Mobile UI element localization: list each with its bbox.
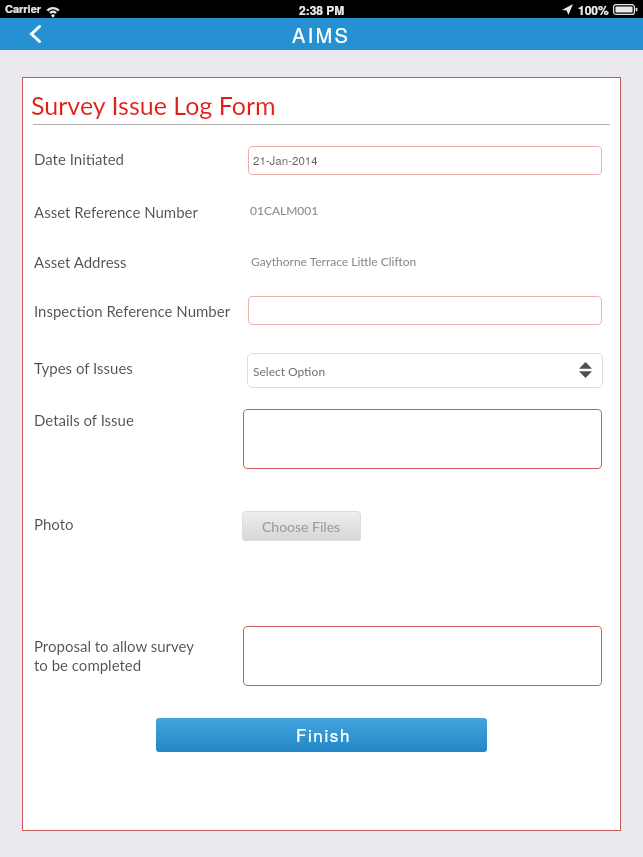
- staticText: 21-Jan-2014: [253, 152, 318, 168]
- staticText: 100%: [578, 1, 609, 18]
- button[interactable]: Details of Issue: [243, 409, 602, 469]
- staticText: 01CALM001: [250, 203, 319, 217]
- staticText: Carrier: [5, 1, 42, 17]
- staticText: 2:38 PM: [299, 1, 345, 18]
- button[interactable]: Inspection Reference Number: [248, 296, 602, 325]
- staticText: Gaythorne Terrace Little Clifton: [251, 254, 417, 268]
- staticText: AIMS: [292, 20, 351, 49]
- staticText: Choose Files: [262, 518, 341, 535]
- staticText: Asset Address: [34, 253, 127, 271]
- button[interactable]: Types of Issues: [247, 353, 603, 388]
- staticText: Survey Issue Log Form: [31, 90, 276, 120]
- button[interactable]: Proposal to allow survey to be completed: [243, 626, 602, 686]
- staticText: Details of Issue: [34, 411, 134, 429]
- staticText: Select Option: [253, 364, 326, 378]
- staticText: Types of Issues: [34, 359, 133, 377]
- staticText: Finish: [296, 722, 351, 746]
- button[interactable]: Back: [13, 18, 57, 50]
- button[interactable]: Date Initiated: [248, 146, 602, 175]
- button[interactable]: Choose Files: [242, 511, 361, 541]
- staticText: Asset Reference Number: [34, 203, 198, 221]
- staticText: Photo: [34, 515, 74, 533]
- staticText: Date Initiated: [34, 150, 124, 168]
- button[interactable]: Finish: [156, 718, 487, 752]
- staticText: Inspection Reference Number: [34, 302, 231, 320]
- staticText: Proposal to allow survey to be completed: [34, 637, 194, 675]
